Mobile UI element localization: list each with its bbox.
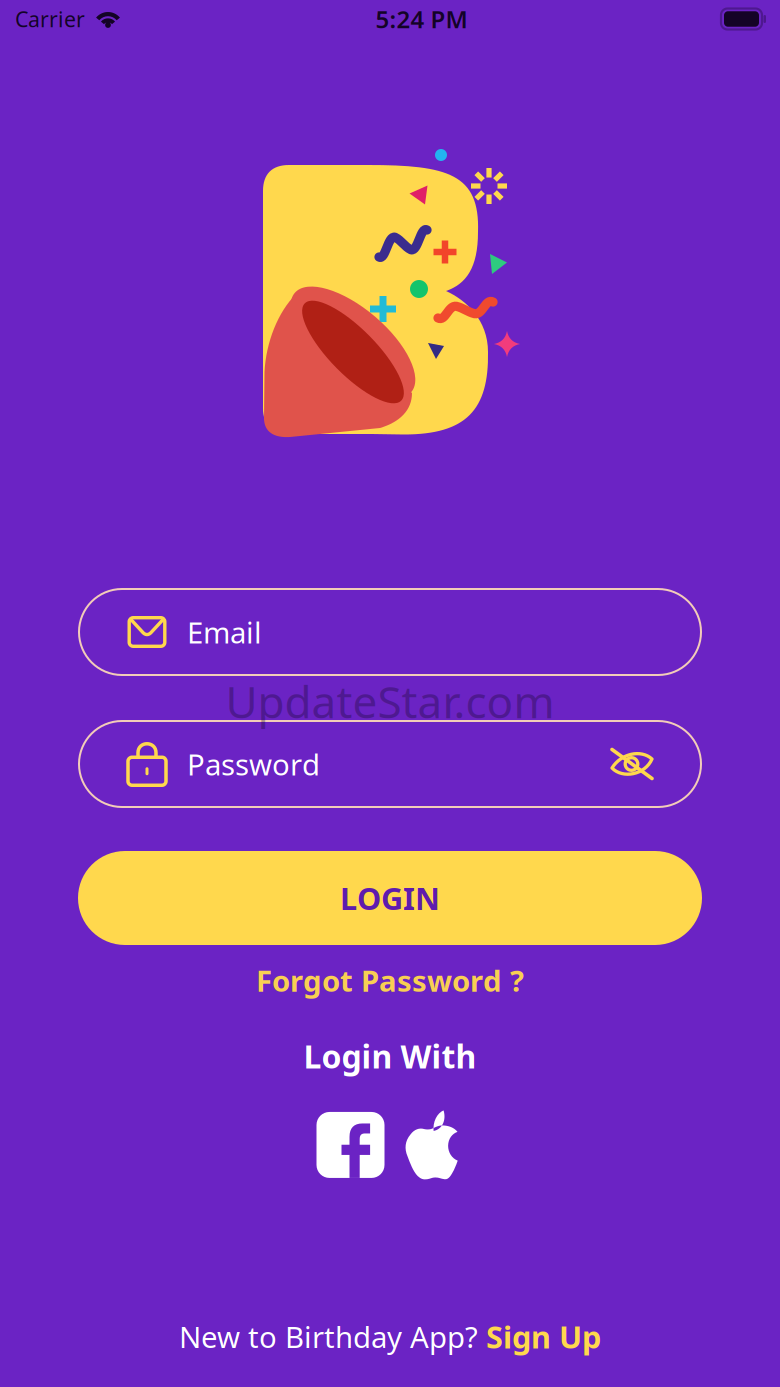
staticText: Forgot Password ?	[256, 961, 524, 1000]
staticText: Sign Up	[486, 1316, 601, 1357]
staticText: UpdateStar.com	[225, 672, 554, 730]
staticText: Password	[187, 744, 320, 783]
button[interactable]: Email	[78, 588, 702, 676]
staticText: New to Birthday App?	[179, 1317, 486, 1356]
button[interactable]: LOGIN	[78, 851, 702, 945]
staticText: Login With	[303, 1035, 476, 1077]
button[interactable]: Sign in with Apple	[407, 1110, 457, 1179]
staticText: Email	[187, 612, 262, 651]
button[interactable]: Sign Up	[486, 1316, 601, 1357]
staticText: 5:24 PM	[375, 3, 467, 35]
staticText: LOGIN	[340, 878, 440, 918]
staticText: Carrier	[15, 5, 85, 33]
button[interactable]: Sign in with Facebook	[316, 1112, 384, 1178]
button[interactable]: Forgot Password ?	[240, 953, 540, 1008]
button[interactable]: Password	[78, 720, 702, 808]
